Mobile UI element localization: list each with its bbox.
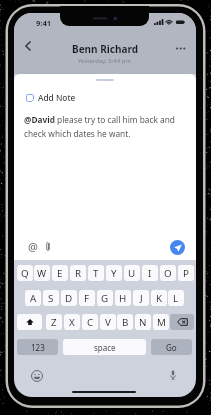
button[interactable]: C [82,314,98,330]
staticText: F [84,292,90,305]
staticText: C [87,316,94,329]
staticText: V [105,316,111,329]
staticText: Q [21,267,29,280]
button[interactable]: Emoji keyboard [29,368,45,384]
button[interactable]: Q [17,265,33,281]
button[interactable]: Shift [17,314,42,330]
staticText: G [101,292,109,305]
button[interactable]: E [52,265,68,281]
staticText: L [173,292,179,305]
button[interactable]: O [160,265,176,281]
staticText: E [57,267,63,280]
staticText: S [48,292,54,305]
button[interactable]: More options [172,39,190,57]
staticText: P [183,267,189,280]
button[interactable]: L [168,290,184,306]
button[interactable]: B [117,314,133,330]
staticText: Add Note [38,92,76,103]
button[interactable]: F [79,290,95,306]
button[interactable]: D [61,290,77,306]
button[interactable]: X [64,314,80,330]
staticText: D [65,292,73,305]
staticText: N [139,316,147,329]
button[interactable]: Go [151,339,192,355]
staticText: O [164,267,172,280]
staticText: W [37,267,47,280]
button[interactable]: S [43,290,59,306]
button[interactable]: M [153,314,169,330]
staticText: B [122,316,129,329]
button[interactable]: Z [46,314,62,330]
button[interactable]: 123 [17,339,58,355]
button[interactable]: K [151,290,167,306]
button[interactable]: Attach file [40,238,56,254]
staticText: 9:41 [36,18,51,28]
staticText: @David please try to call him back and c… [24,114,178,139]
staticText: space [94,342,116,353]
button[interactable]: A [25,290,41,306]
button[interactable]: Dictate [166,368,180,382]
staticText: Benn Richard [72,42,139,56]
staticText: H [119,292,127,305]
staticText: @ [28,239,38,254]
staticText: M [157,316,166,329]
button[interactable]: G [97,290,113,306]
button[interactable]: T [88,265,104,281]
button[interactable]: Back [19,37,37,55]
button[interactable]: Send [170,240,185,255]
staticText: Z [51,316,57,329]
button[interactable]: P [178,265,194,281]
staticText: Yesterday, 5:44 pm [78,57,132,65]
staticText: A [30,292,37,305]
button[interactable]: H [115,290,131,306]
staticText: R [75,267,82,280]
staticText: K [156,292,163,305]
button[interactable]: Backspace [170,314,194,330]
button[interactable]: U [124,265,140,281]
staticText: Go [166,342,177,353]
button[interactable]: N [135,314,151,330]
button[interactable]: Y [106,265,122,281]
staticText: I [148,267,152,280]
button[interactable]: J [133,290,149,306]
button[interactable]: V [100,314,116,330]
staticText: X [69,316,75,329]
staticText: U [128,267,136,280]
staticText: T [93,267,99,280]
button[interactable]: space [63,339,146,355]
staticText: 123 [31,342,45,353]
button[interactable]: Mention someone [25,238,41,254]
button[interactable]: W [34,265,50,281]
button[interactable]: I [142,265,158,281]
button[interactable]: R [70,265,86,281]
staticText: J [140,292,143,305]
button[interactable]: Add Note [26,90,76,105]
staticText: Y [111,267,117,280]
